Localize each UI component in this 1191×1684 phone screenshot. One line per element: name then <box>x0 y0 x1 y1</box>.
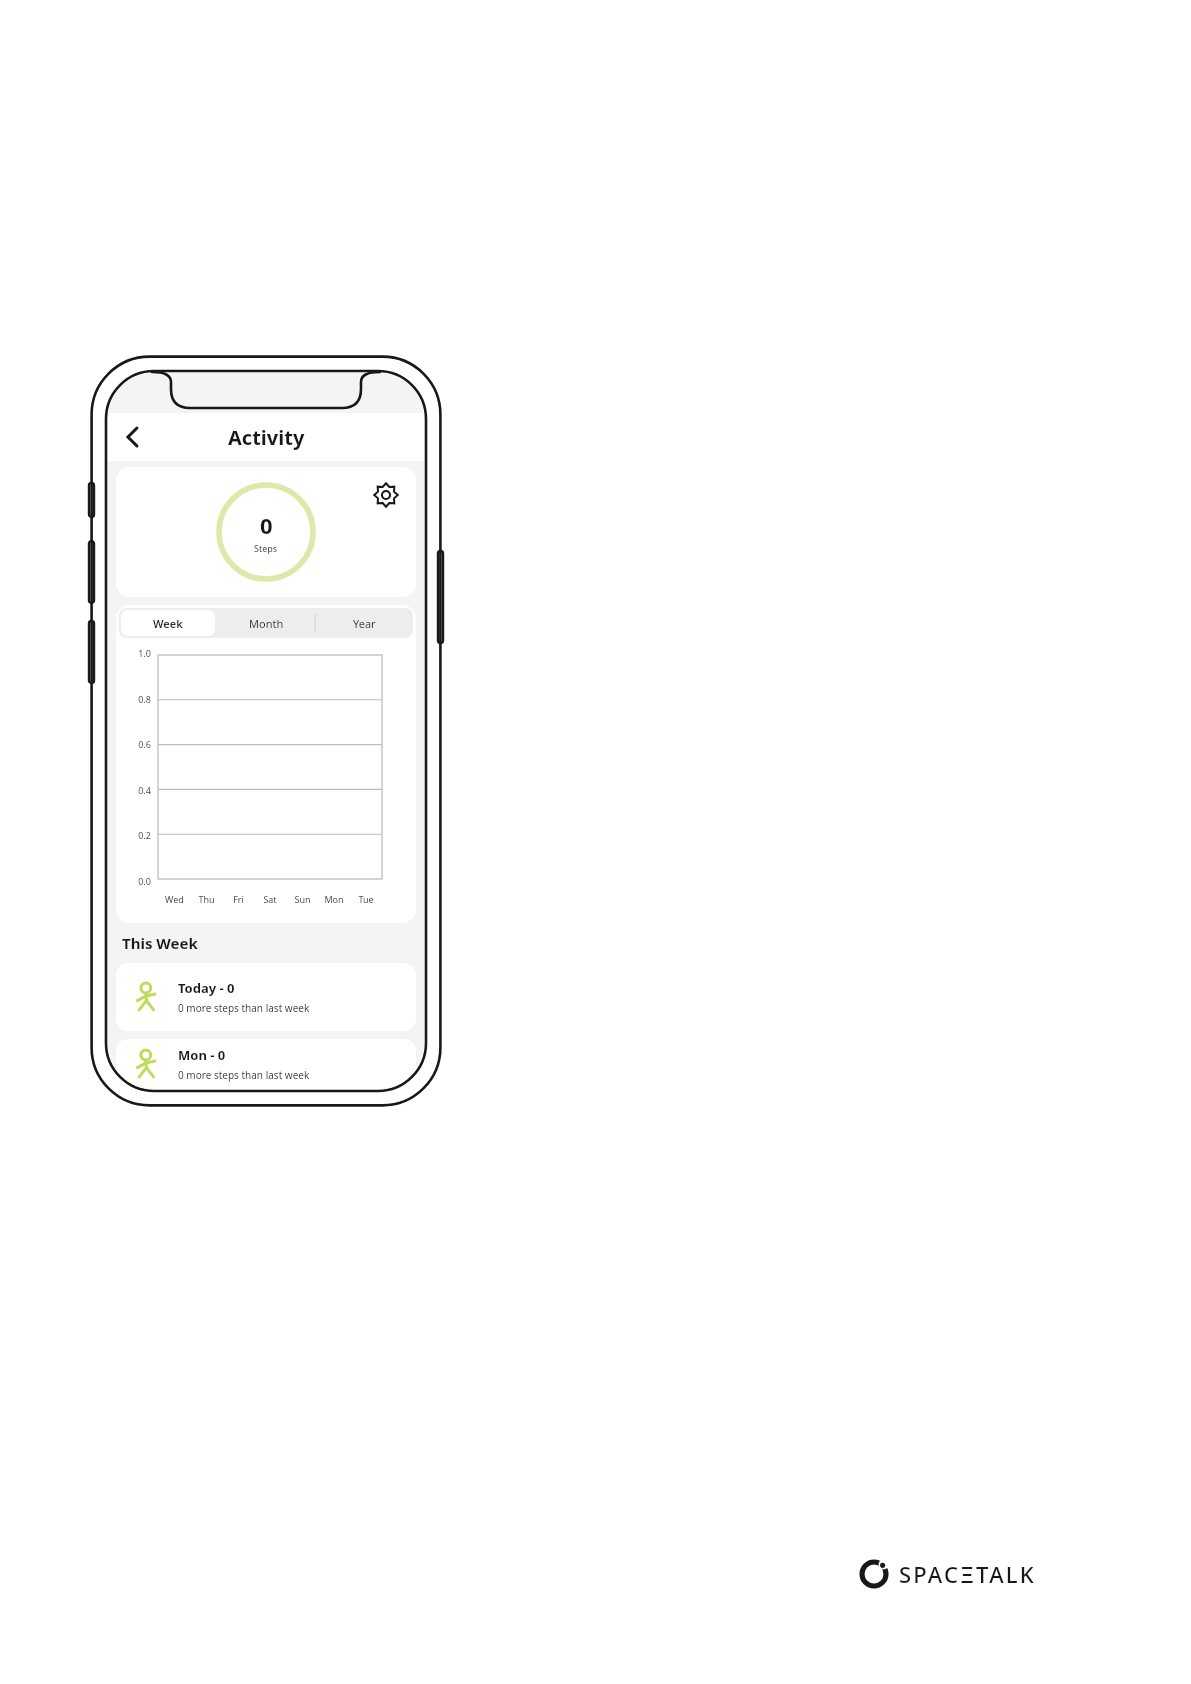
staticText: 0 <box>260 510 273 540</box>
staticText: Thu <box>198 893 215 905</box>
button[interactable]: Back <box>114 419 150 455</box>
staticText: Fri <box>233 893 244 905</box>
staticText: 1.0 <box>138 647 151 659</box>
staticText: Today - 0 <box>178 979 235 997</box>
button[interactable]: Mon - 0 <box>116 1039 416 1089</box>
staticText: SPACΞTALK <box>899 1559 1036 1589</box>
button[interactable]: 0 <box>116 467 416 597</box>
button[interactable]: Month <box>217 608 315 638</box>
staticText: Mon - 0 <box>178 1046 226 1064</box>
staticText: Year <box>353 616 376 631</box>
staticText: Steps <box>254 542 278 554</box>
staticText: Sun <box>294 893 311 905</box>
staticText: Mon <box>324 893 344 905</box>
staticText: Wed <box>165 893 184 905</box>
staticText: This Week <box>122 933 198 953</box>
button[interactable]: Today - 0 <box>116 963 416 1031</box>
button[interactable]: Settings <box>372 481 400 509</box>
staticText: 0 more steps than last week <box>178 1068 310 1082</box>
staticText: Week <box>153 616 183 631</box>
staticText: Tue <box>358 893 374 905</box>
staticText: Sat <box>263 893 277 905</box>
staticText: 0.2 <box>138 829 151 841</box>
button[interactable]: Week <box>121 610 215 636</box>
staticText: 0.0 <box>138 875 151 887</box>
staticText: 0.4 <box>138 784 151 796</box>
staticText: 0.6 <box>138 738 151 750</box>
staticText: Activity <box>228 424 305 451</box>
button[interactable]: Year <box>315 608 413 638</box>
staticText: 0 more steps than last week <box>178 1001 310 1015</box>
staticText: Month <box>249 616 284 631</box>
staticText: 0.8 <box>138 693 151 705</box>
